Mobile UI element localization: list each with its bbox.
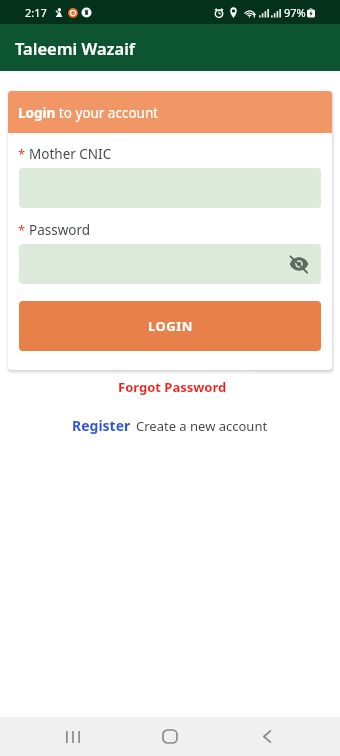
staticText: Create a new account — [136, 417, 268, 435]
staticText: Register — [72, 416, 131, 435]
button[interactable]: Register — [72, 416, 131, 435]
button[interactable]: Home — [121, 717, 218, 756]
staticText: * — [18, 145, 26, 163]
staticText: Login to your account — [18, 104, 159, 122]
button[interactable]: Recent apps — [25, 717, 121, 756]
button[interactable]: LOGIN — [19, 301, 321, 351]
staticText: Mother CNIC — [29, 145, 112, 163]
button[interactable]: Show password — [288, 253, 310, 275]
staticText: 2:17 — [25, 5, 47, 20]
button[interactable]: Password input — [19, 244, 321, 284]
staticText: Forgot Password — [118, 378, 227, 396]
staticText: * — [18, 221, 26, 239]
staticText: Password — [29, 221, 91, 239]
staticText: 97% — [284, 5, 306, 20]
button[interactable]: Forgot Password — [2, 378, 340, 396]
staticText: LOGIN — [148, 317, 193, 335]
staticText: Taleemi Wazaif — [15, 37, 135, 59]
button[interactable]: Back — [218, 717, 315, 756]
